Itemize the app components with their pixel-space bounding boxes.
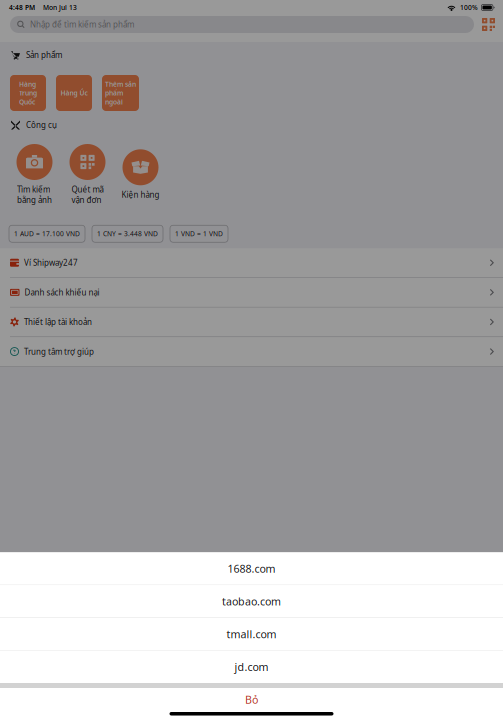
button[interactable]: Hàng Úc [56, 75, 92, 111]
button[interactable]: Thiết lập tài khoản [0, 307, 503, 337]
staticText: 1 AUD = 17.100 VND [14, 229, 80, 238]
staticText: Bỏ [245, 692, 258, 707]
button[interactable]: Trung tâm trợ giúp [0, 337, 503, 367]
staticText: Hàng Trung Quốc [19, 80, 37, 106]
button[interactable]: Ví Shipway247 [0, 248, 503, 278]
staticText: Công cụ [26, 120, 57, 130]
staticText: Quét mã vận đơn [71, 184, 103, 205]
staticText: Mon Jul 13 [43, 3, 77, 12]
staticText: Trung tâm trợ giúp [24, 346, 94, 357]
staticText: Tìm kiếm bằng ảnh [17, 184, 52, 205]
staticText: Hàng Úc [60, 89, 87, 97]
button[interactable]: Hàng Trung Quốc [10, 75, 46, 111]
button[interactable]: Quét mã vận đơn [61, 144, 114, 205]
staticText: Thiết lập tài khoản [24, 317, 92, 327]
staticText: 1688.com [227, 561, 275, 576]
staticText: jd.com [234, 660, 268, 674]
staticText: Kiện hàng [121, 189, 159, 200]
button[interactable]: Bỏ [0, 688, 503, 711]
staticText: Sản phẩm [26, 50, 62, 60]
staticText: 1 VND = 1 VND [175, 229, 223, 238]
staticText: 1 CNY = 3.448 VND [97, 229, 158, 238]
button[interactable]: tmall.com [0, 618, 503, 650]
button[interactable]: Kiện hàng [114, 149, 167, 200]
button[interactable]: Quét mã QR [474, 15, 503, 34]
button[interactable]: jd.com [0, 651, 503, 683]
staticText: 100% [460, 3, 478, 12]
staticText: Nhập để tìm kiếm sản phẩm [30, 19, 134, 30]
staticText: Thêm sản phẩm ngoài [105, 80, 136, 106]
button[interactable]: 1688.com [0, 552, 503, 585]
staticText: tmall.com [226, 627, 276, 641]
staticText: taobao.com [222, 594, 281, 608]
button[interactable]: Thêm sản phẩm ngoài [102, 75, 139, 111]
button[interactable]: Tìm kiếm bằng ảnh [8, 144, 61, 205]
staticText: Danh sách khiếu nại [24, 287, 99, 298]
button[interactable]: Danh sách khiếu nại [0, 278, 503, 307]
staticText: 4:48 PM [9, 3, 35, 12]
staticText: Ví Shipway247 [24, 257, 78, 268]
button[interactable]: taobao.com [0, 585, 503, 617]
